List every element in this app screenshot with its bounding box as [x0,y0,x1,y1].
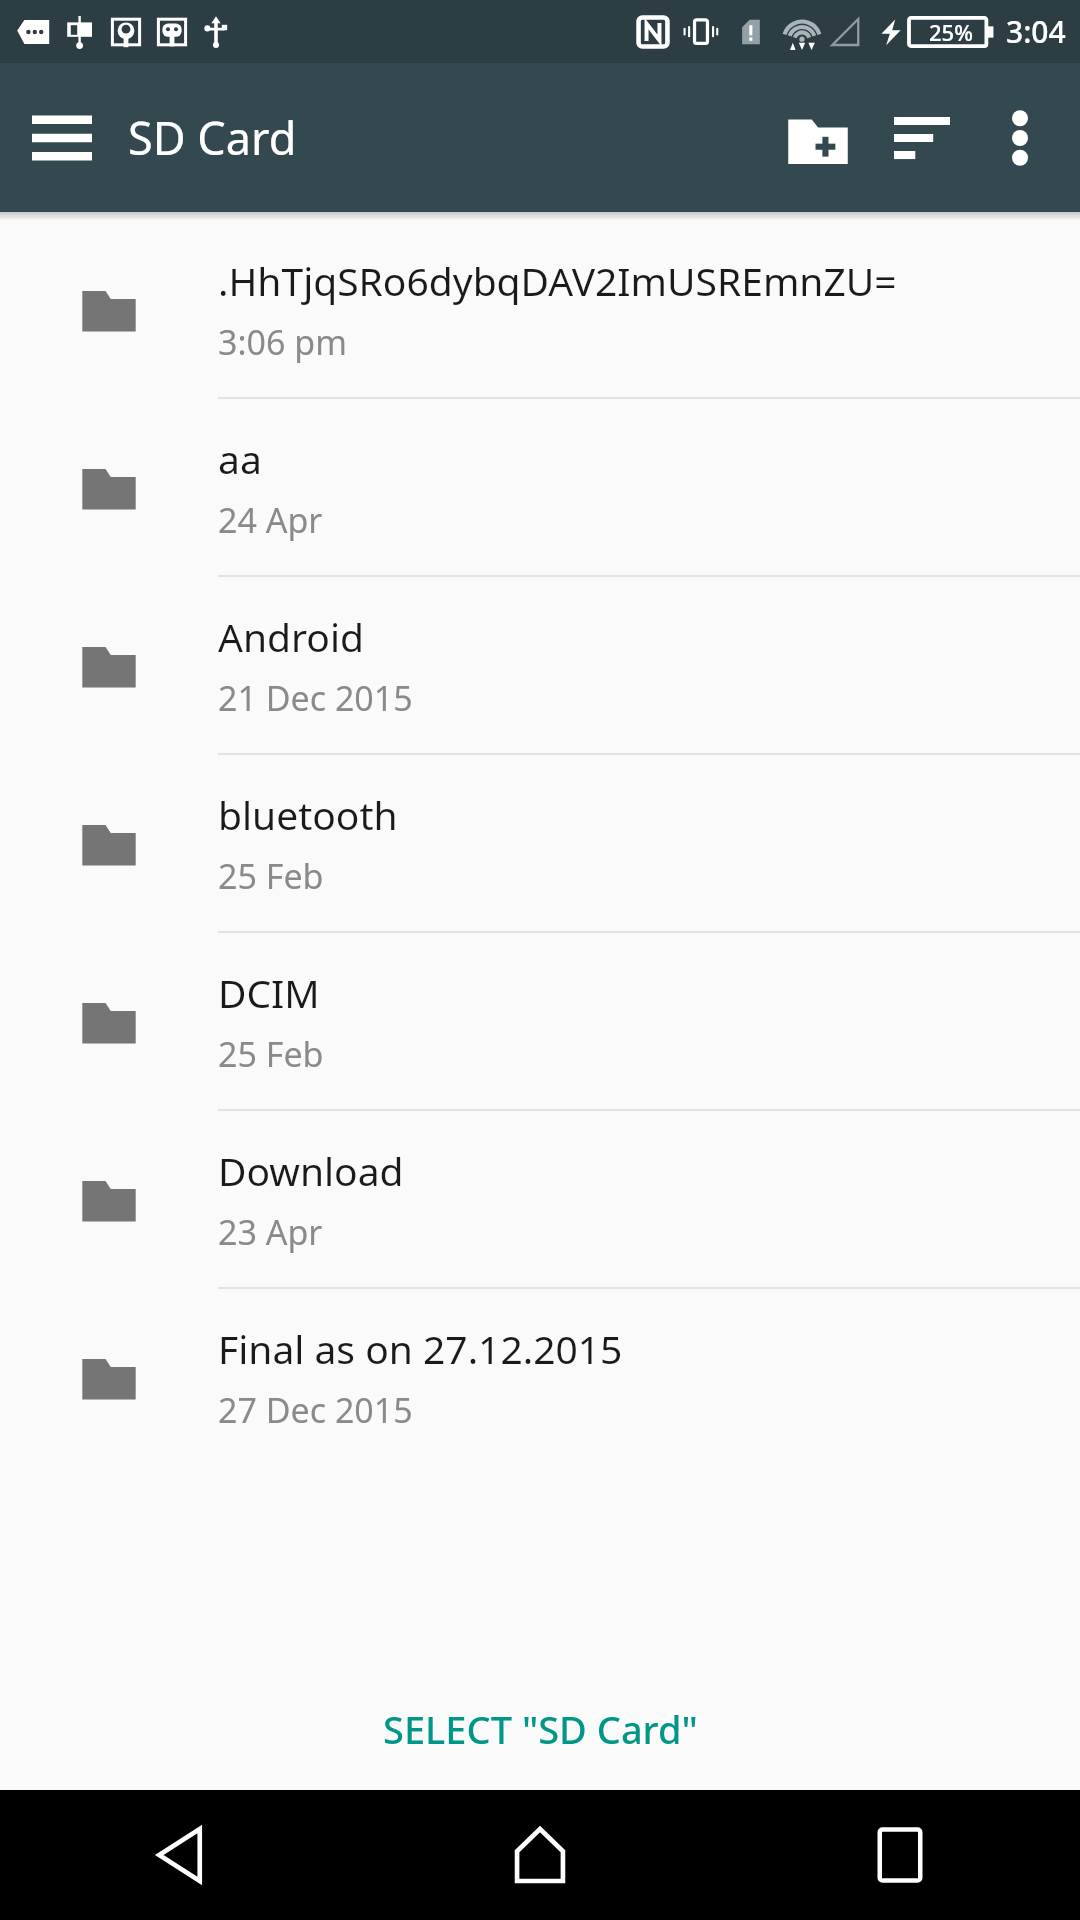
button[interactable]: Android [0,577,1080,753]
button[interactable]: bluetooth [0,755,1080,931]
staticText: SELECT "SD Card" [383,1703,698,1755]
staticText: DCIM [218,966,320,1019]
button[interactable]: aa [0,399,1080,575]
staticText: 27 Dec 2015 [218,1387,413,1433]
button[interactable]: Recent apps [720,1790,1080,1920]
staticText: aa [218,432,262,485]
button[interactable]: Home [360,1790,720,1920]
button[interactable]: SELECT "SD Card" [0,1668,1080,1790]
button[interactable]: Open navigation drawer [14,90,110,186]
staticText: SD Card [128,107,297,168]
staticText: 3:06 pm [218,319,347,365]
staticText: 24 Apr [218,497,323,543]
button[interactable]: .HhTjqSRo6dybqDAV2ImUSREmnZU= [0,221,1080,397]
staticText: .HhTjqSRo6dybqDAV2ImUSREmnZU= [218,254,897,307]
button[interactable]: More options [974,92,1066,184]
staticText: bluetooth [218,788,398,841]
button[interactable]: Final as on 27.12.2015 [0,1289,1080,1465]
staticText: 25 Feb [218,1031,324,1077]
button[interactable]: DCIM [0,933,1080,1109]
staticText: 25% [929,17,973,47]
staticText: 23 Apr [218,1209,323,1255]
button[interactable]: Download [0,1111,1080,1287]
staticText: Download [218,1144,404,1197]
staticText: Android [218,610,364,663]
staticText: Final as on 27.12.2015 [218,1322,623,1375]
button[interactable]: New folder [766,86,870,190]
staticText: 25 Feb [218,853,324,899]
button[interactable]: Back [0,1790,360,1920]
button[interactable]: Sort [870,86,974,190]
staticText: 3:04 [1006,11,1066,52]
staticText: 21 Dec 2015 [218,675,413,721]
